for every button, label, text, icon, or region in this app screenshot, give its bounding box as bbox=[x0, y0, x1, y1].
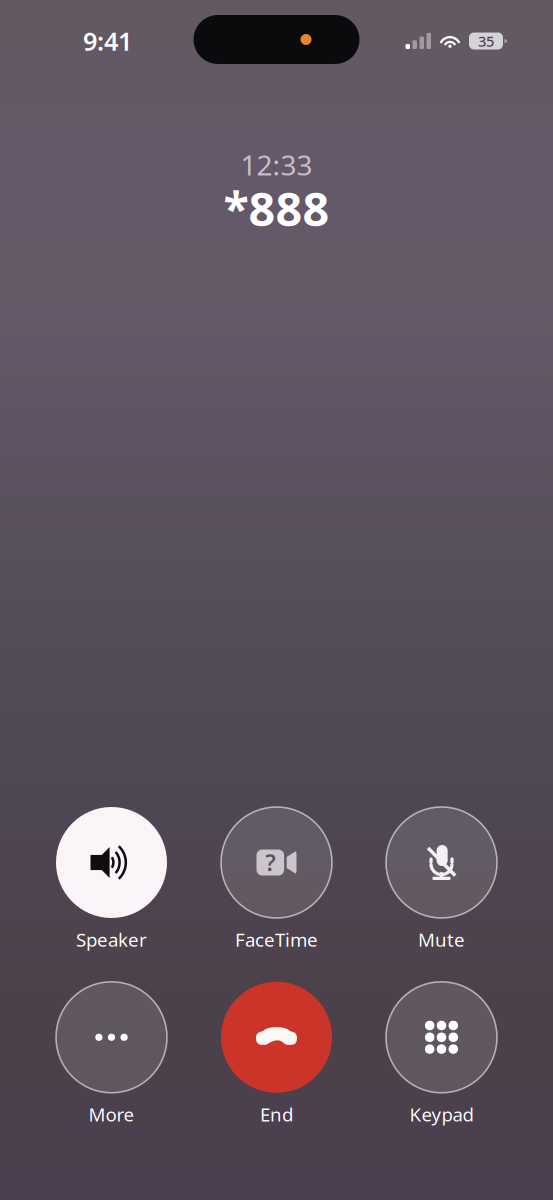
staticText: End bbox=[260, 1102, 293, 1127]
button[interactable]: More bbox=[56, 982, 167, 1127]
staticText: 9:41 bbox=[83, 24, 132, 58]
staticText: 35 bbox=[478, 31, 494, 51]
staticText: ? bbox=[265, 847, 275, 877]
button[interactable]: End bbox=[221, 982, 332, 1127]
staticText: Mute bbox=[418, 927, 465, 952]
button[interactable]: Mute bbox=[386, 807, 497, 952]
staticText: Speaker bbox=[76, 927, 147, 952]
button[interactable]: Keypad bbox=[386, 982, 497, 1127]
staticText: 12:33 bbox=[240, 146, 312, 183]
staticText: FaceTime bbox=[235, 927, 318, 952]
button[interactable]: Speaker bbox=[56, 807, 167, 952]
staticText: *888 bbox=[223, 177, 329, 239]
staticText: Keypad bbox=[409, 1102, 473, 1127]
button[interactable]: ? bbox=[221, 807, 332, 952]
staticText: More bbox=[88, 1102, 134, 1127]
